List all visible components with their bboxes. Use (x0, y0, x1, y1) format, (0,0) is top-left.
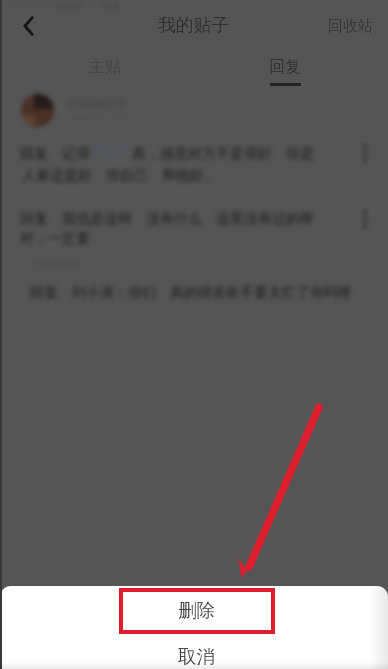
button[interactable]: 删除 (0, 586, 388, 632)
staticText: 对，一定要 (20, 230, 90, 248)
button[interactable]: 回收站 (328, 17, 373, 36)
button[interactable]: 取消 (0, 632, 388, 669)
staticText: 回复 刘小涛：你们 真的很喜欢不要太忙了你吗呀 (30, 282, 352, 301)
button[interactable]: 回复 (262, 57, 308, 92)
staticText: 回收站 (328, 17, 373, 36)
staticText: 回复 我也是这样 没有什么 这里没有过的呀 (20, 208, 314, 227)
staticText: 删除 (178, 599, 215, 622)
staticText: 回复 记得 (20, 143, 90, 162)
staticText: 回复 (269, 57, 301, 77)
staticText: 我的贴子 (158, 14, 230, 36)
staticText: 主贴 (89, 57, 121, 77)
staticText: 取消 (178, 645, 215, 668)
button[interactable]: Back (5, 8, 53, 44)
staticText: 人家还是好 你自己 和他好。 (22, 165, 218, 184)
staticText: 真，感觉对方不是很好 但是 (132, 143, 314, 162)
button[interactable]: 主贴 (82, 57, 128, 87)
